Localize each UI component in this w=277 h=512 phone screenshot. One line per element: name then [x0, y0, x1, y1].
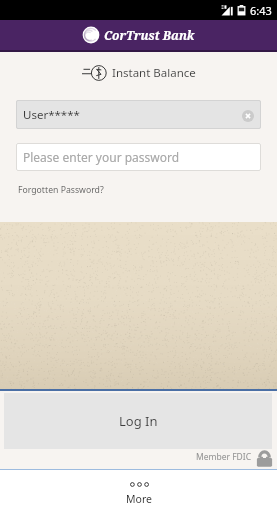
button[interactable]: Instant Balance — [0, 62, 277, 84]
staticText: Member FDIC — [196, 451, 252, 463]
button[interactable]: Clear — [242, 110, 254, 122]
button[interactable]: User***** — [16, 100, 261, 129]
staticText: Log In — [119, 412, 158, 430]
staticText: CorTrust Bank — [104, 27, 195, 43]
staticText: Please enter your password — [23, 149, 180, 165]
button[interactable]: More — [110, 470, 168, 512]
button[interactable]: Please enter your password — [16, 143, 261, 171]
staticText: More — [126, 492, 152, 506]
button[interactable]: Log In — [4, 393, 272, 449]
button[interactable]: Forgotten Password? — [18, 184, 104, 196]
staticText: User***** — [23, 107, 80, 123]
staticText: Instant Balance — [112, 65, 196, 81]
staticText: 6:43 — [250, 3, 272, 18]
